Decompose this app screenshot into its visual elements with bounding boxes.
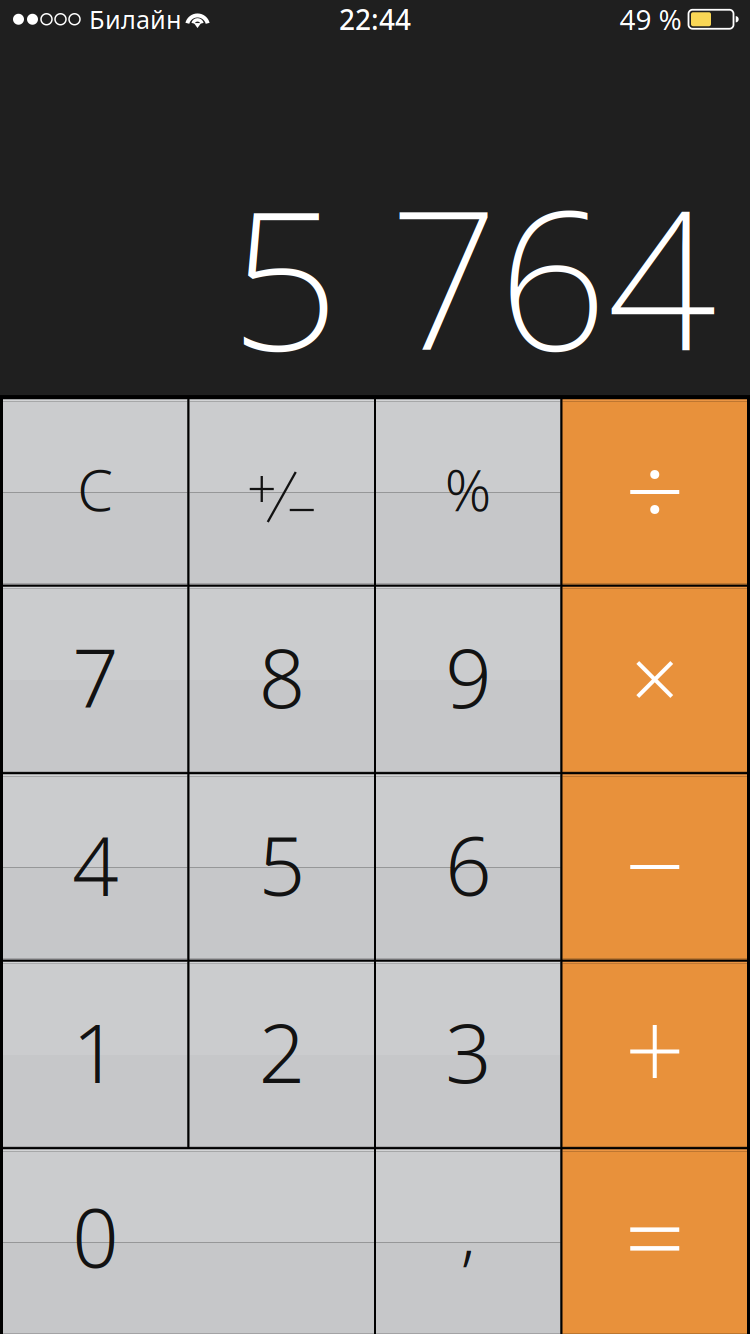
staticText: 2 — [259, 997, 305, 1105]
button[interactable]: % — [376, 399, 560, 585]
button[interactable]: 6 — [376, 774, 560, 960]
staticText: 49 % — [619, 1, 681, 38]
staticText: C — [77, 451, 113, 527]
button[interactable]: 7 — [3, 587, 187, 772]
button[interactable]: 9 — [376, 587, 560, 772]
staticText: 9 — [445, 622, 491, 730]
staticText: 8 — [259, 622, 305, 730]
button[interactable]: , — [376, 1149, 560, 1334]
staticText: 3 — [445, 997, 491, 1105]
staticText: Билайн — [89, 2, 182, 36]
button[interactable]: Plus minus — [189, 399, 374, 585]
button[interactable]: Subtract — [562, 774, 747, 960]
button[interactable]: Add — [562, 962, 747, 1147]
button[interactable]: 0 — [3, 1149, 374, 1334]
button[interactable]: 4 — [3, 774, 187, 960]
staticText: 22:44 — [339, 1, 411, 38]
button[interactable]: 8 — [189, 587, 374, 772]
staticText: 1 — [72, 997, 118, 1105]
staticText: % — [445, 451, 492, 527]
button[interactable]: Equals — [562, 1149, 747, 1334]
staticText: 5 764 — [230, 148, 716, 403]
button[interactable]: Divide — [562, 399, 747, 585]
button[interactable]: 2 — [189, 962, 374, 1147]
staticText: , — [461, 1190, 476, 1276]
button[interactable]: 5 — [189, 774, 374, 960]
button[interactable]: 3 — [376, 962, 560, 1147]
button[interactable]: Multiply — [562, 587, 747, 772]
staticText: 4 — [72, 810, 118, 918]
button[interactable]: C — [3, 399, 187, 585]
staticText: 0 — [72, 1182, 118, 1290]
staticText: 6 — [445, 810, 491, 918]
staticText: 5 — [259, 810, 305, 918]
button[interactable]: 1 — [3, 962, 187, 1147]
staticText: 7 — [72, 622, 118, 730]
